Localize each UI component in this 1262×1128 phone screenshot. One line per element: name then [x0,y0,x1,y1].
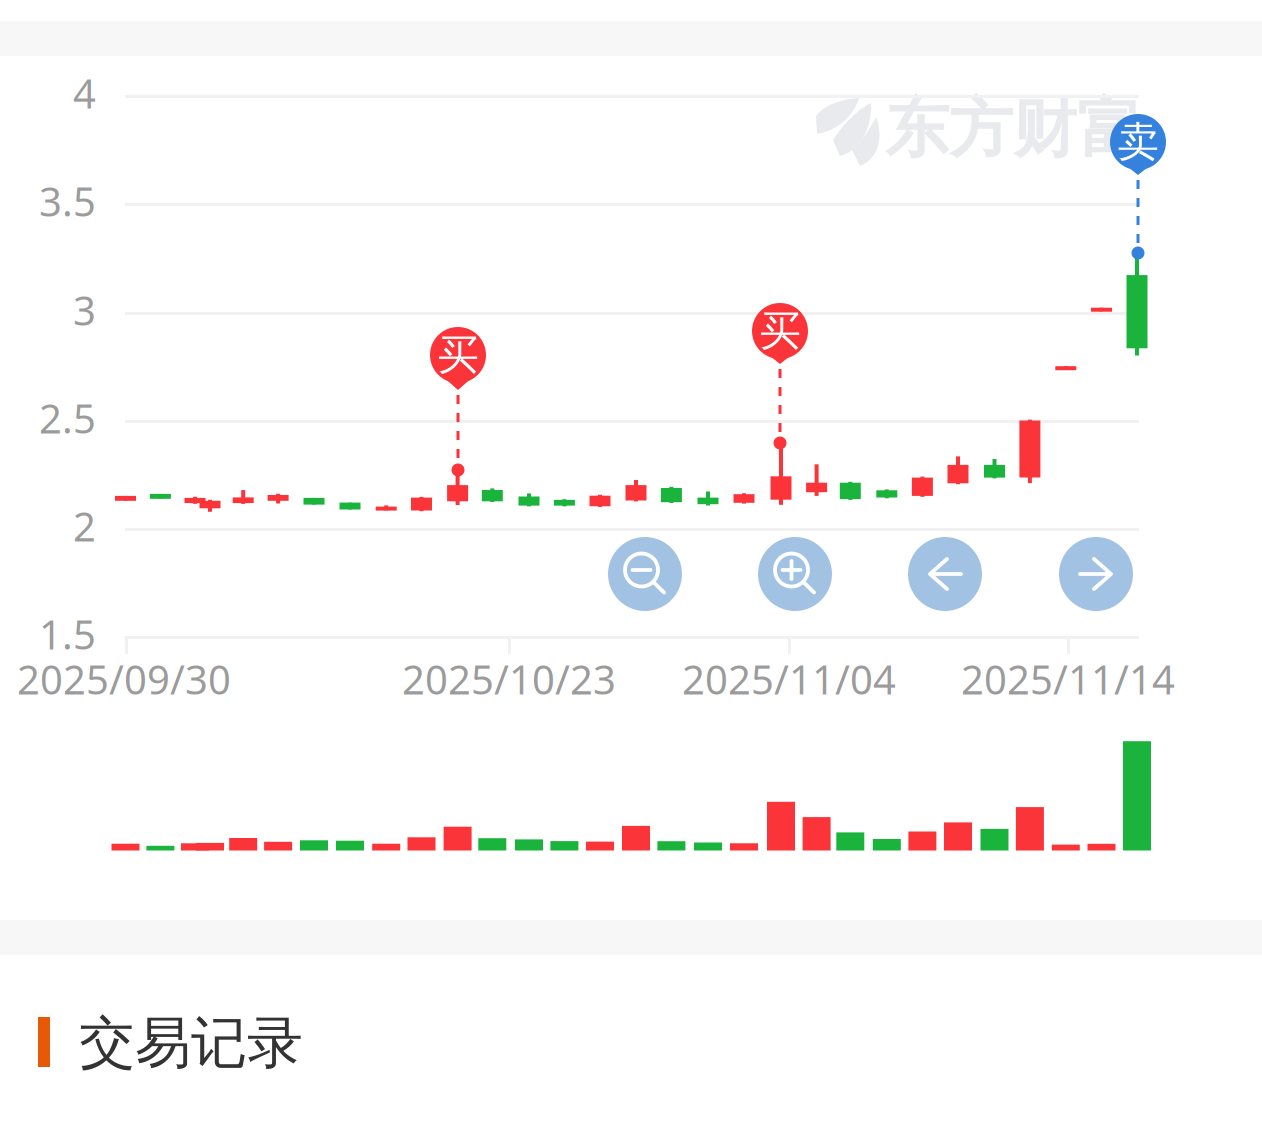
staticText: 2025/11/14 [961,652,1175,705]
staticText: 3 [73,283,96,336]
staticText: 3.5 [39,174,96,227]
button[interactable]: Scroll right [1059,537,1133,611]
staticText: 2 [73,499,96,552]
button[interactable]: Zoom in [758,537,832,611]
staticText: 交易记录 [79,1009,303,1077]
staticText: 2.5 [39,391,96,444]
staticText: 买 [759,306,800,356]
staticText: 卖 [1117,117,1158,167]
staticText: 东方财富 [885,90,1141,168]
staticText: 买 [437,330,478,380]
button[interactable]: Scroll left [908,537,982,611]
staticText: 1.5 [39,607,96,660]
staticText: 4 [73,66,96,119]
button[interactable]: Zoom out [608,537,682,611]
staticText: 2025/09/30 [17,652,231,705]
staticText: 2025/10/23 [402,652,616,705]
staticText: 2025/11/04 [682,652,896,705]
